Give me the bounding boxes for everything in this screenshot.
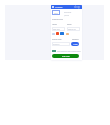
staticText: jane@x.co xyxy=(68,28,76,30)
staticText: Email xyxy=(67,23,72,25)
button[interactable]: Jane Doe xyxy=(52,27,65,31)
button[interactable]: Checkout xyxy=(51,5,82,9)
staticText: Contact info xyxy=(52,18,63,21)
button[interactable]: SAVE10 xyxy=(52,42,70,46)
staticText: Pay now xyxy=(62,55,70,58)
button[interactable]: card xyxy=(52,10,60,15)
staticText: card xyxy=(54,12,58,14)
staticText: Apply xyxy=(73,43,78,45)
staticText: optional xyxy=(72,38,79,40)
staticText: Name xyxy=(52,23,57,25)
staticText: SAVE10 xyxy=(53,43,60,45)
button[interactable]: Apply xyxy=(71,42,79,46)
button[interactable]: jane@x.co xyxy=(67,27,80,31)
staticText: Promo code xyxy=(52,38,62,40)
staticText: Checkout xyxy=(55,6,63,8)
staticText: Your payment info is encrypted xyxy=(57,50,81,52)
staticText: shop xyxy=(74,5,81,9)
button[interactable]: Visa xyxy=(52,33,55,35)
button[interactable]: PayPal xyxy=(60,32,64,35)
staticText: $24.90 xyxy=(64,14,69,16)
staticText: item total xyxy=(64,11,72,13)
button[interactable]: Amex xyxy=(66,33,69,35)
button[interactable]: Mastercard xyxy=(56,32,59,35)
button[interactable]: Pay now xyxy=(52,54,79,58)
staticText: Jane Doe xyxy=(53,28,60,30)
